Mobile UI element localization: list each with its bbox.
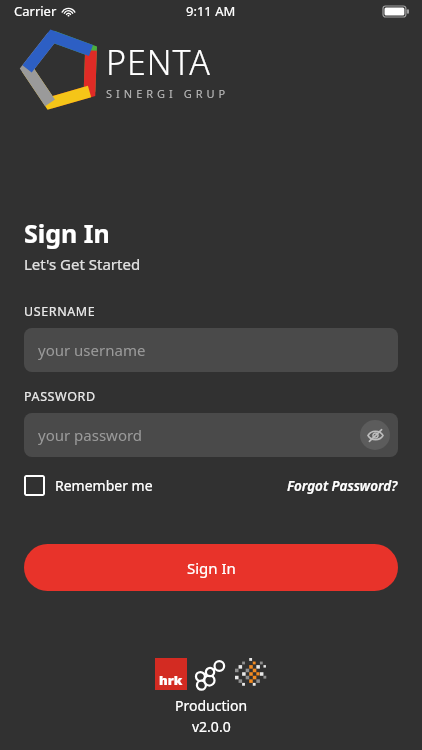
staticText: Let's Get Started [24,254,141,274]
staticText: SINERGI GRUP [106,86,230,101]
staticText: PENTA [106,39,211,85]
staticText: USERNAME [24,303,96,320]
staticText: v2.0.0 [192,717,231,736]
staticText: Sign In [187,558,236,578]
staticText: Carrier [14,2,57,20]
button[interactable]: your username [24,328,398,372]
staticText: your username [38,340,146,360]
button[interactable]: Show password [360,420,390,450]
staticText: 9:11 AM [186,2,236,20]
staticText: Forgot Password? [287,477,398,495]
button[interactable]: Remember me [24,471,153,500]
staticText: Remember me [55,476,153,495]
staticText: hrk [159,671,183,689]
staticText: PASSWORD [24,388,96,405]
button[interactable]: your password [24,413,398,457]
button[interactable]: Forgot Password? [287,473,398,499]
button[interactable]: Sign In [24,544,398,591]
staticText: your password [38,425,143,445]
staticText: Sign In [24,216,110,250]
staticText: Production [175,696,248,715]
